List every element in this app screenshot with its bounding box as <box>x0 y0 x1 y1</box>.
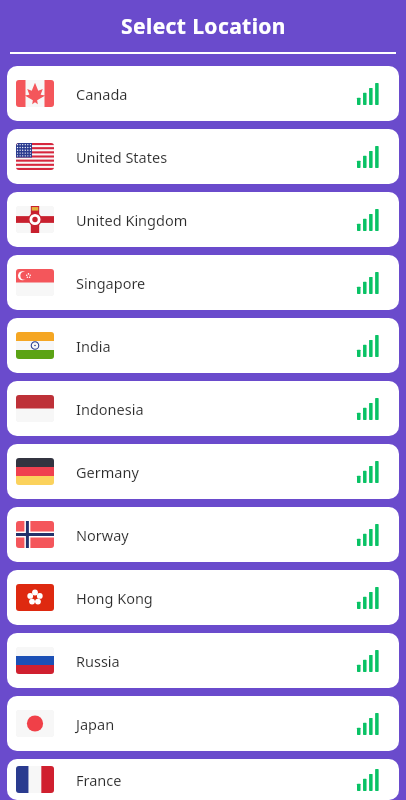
button[interactable]: Russia <box>7 633 399 688</box>
staticText: Singapore <box>76 273 357 293</box>
staticText: Germany <box>76 462 357 482</box>
staticText: United Kingdom <box>76 210 357 230</box>
other: Signal strength <box>357 524 383 546</box>
other: Signal strength <box>357 461 383 483</box>
other: Signal strength <box>357 398 383 420</box>
staticText: Norway <box>76 525 357 545</box>
other: Signal strength <box>357 769 383 791</box>
staticText: Select Location <box>121 12 286 41</box>
other: Signal strength <box>357 335 383 357</box>
button[interactable]: Singapore <box>7 255 399 310</box>
other: Signal strength <box>357 209 383 231</box>
button[interactable]: Norway <box>7 507 399 562</box>
button[interactable]: Japan <box>7 696 399 751</box>
staticText: Canada <box>76 84 357 104</box>
staticText: Indonesia <box>76 399 357 419</box>
staticText: France <box>76 770 357 790</box>
button[interactable]: Indonesia <box>7 381 399 436</box>
button[interactable]: Canada <box>7 66 399 121</box>
staticText: Hong Kong <box>76 588 357 608</box>
other: Signal strength <box>357 272 383 294</box>
other: Signal strength <box>357 83 383 105</box>
button[interactable]: United States <box>7 129 399 184</box>
staticText: Japan <box>76 714 357 734</box>
button[interactable]: United Kingdom <box>7 192 399 247</box>
staticText: India <box>76 336 357 356</box>
button[interactable]: Hong Kong <box>7 570 399 625</box>
other: Signal strength <box>357 650 383 672</box>
staticText: Russia <box>76 651 357 671</box>
button[interactable]: France <box>7 759 399 800</box>
button[interactable]: India <box>7 318 399 373</box>
button[interactable]: Germany <box>7 444 399 499</box>
staticText: United States <box>76 147 357 167</box>
other: Signal strength <box>357 146 383 168</box>
other: Signal strength <box>357 713 383 735</box>
other: Signal strength <box>357 587 383 609</box>
